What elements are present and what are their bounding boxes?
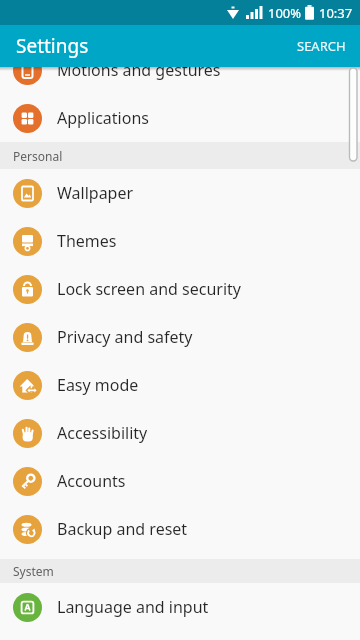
- button[interactable]: Backup and reset: [0, 505, 360, 553]
- button[interactable]: Accounts: [0, 457, 360, 505]
- staticText: 100%: [268, 4, 302, 22]
- button[interactable]: Accessibility: [0, 409, 360, 457]
- button[interactable]: Lock screen and security: [0, 265, 360, 313]
- button[interactable]: Applications: [0, 94, 360, 142]
- staticText: Motions and gestures: [57, 59, 221, 81]
- staticText: Easy mode: [57, 374, 139, 396]
- staticText: Language and input: [57, 596, 209, 618]
- staticText: Applications: [57, 107, 149, 129]
- button[interactable]: Easy mode: [0, 361, 360, 409]
- staticText: Privacy and safety: [57, 326, 193, 348]
- button[interactable]: SEARCH: [283, 25, 360, 67]
- button[interactable]: Wallpaper: [0, 169, 360, 217]
- button[interactable]: Privacy and safety: [0, 313, 360, 361]
- button[interactable]: Motions and gestures: [0, 46, 360, 94]
- staticText: Backup and reset: [57, 518, 188, 540]
- staticText: Accessibility: [57, 422, 148, 444]
- button[interactable]: Language and input: [0, 583, 360, 631]
- staticText: Accounts: [57, 470, 126, 492]
- staticText: Settings: [16, 33, 89, 59]
- staticText: Lock screen and security: [57, 278, 241, 300]
- staticText: SEARCH: [297, 37, 346, 55]
- staticText: Personal: [13, 148, 63, 164]
- button[interactable]: Themes: [0, 217, 360, 265]
- staticText: Themes: [57, 230, 117, 252]
- staticText: System: [13, 563, 54, 579]
- staticText: 10:37: [319, 4, 353, 22]
- staticText: Wallpaper: [57, 182, 134, 204]
